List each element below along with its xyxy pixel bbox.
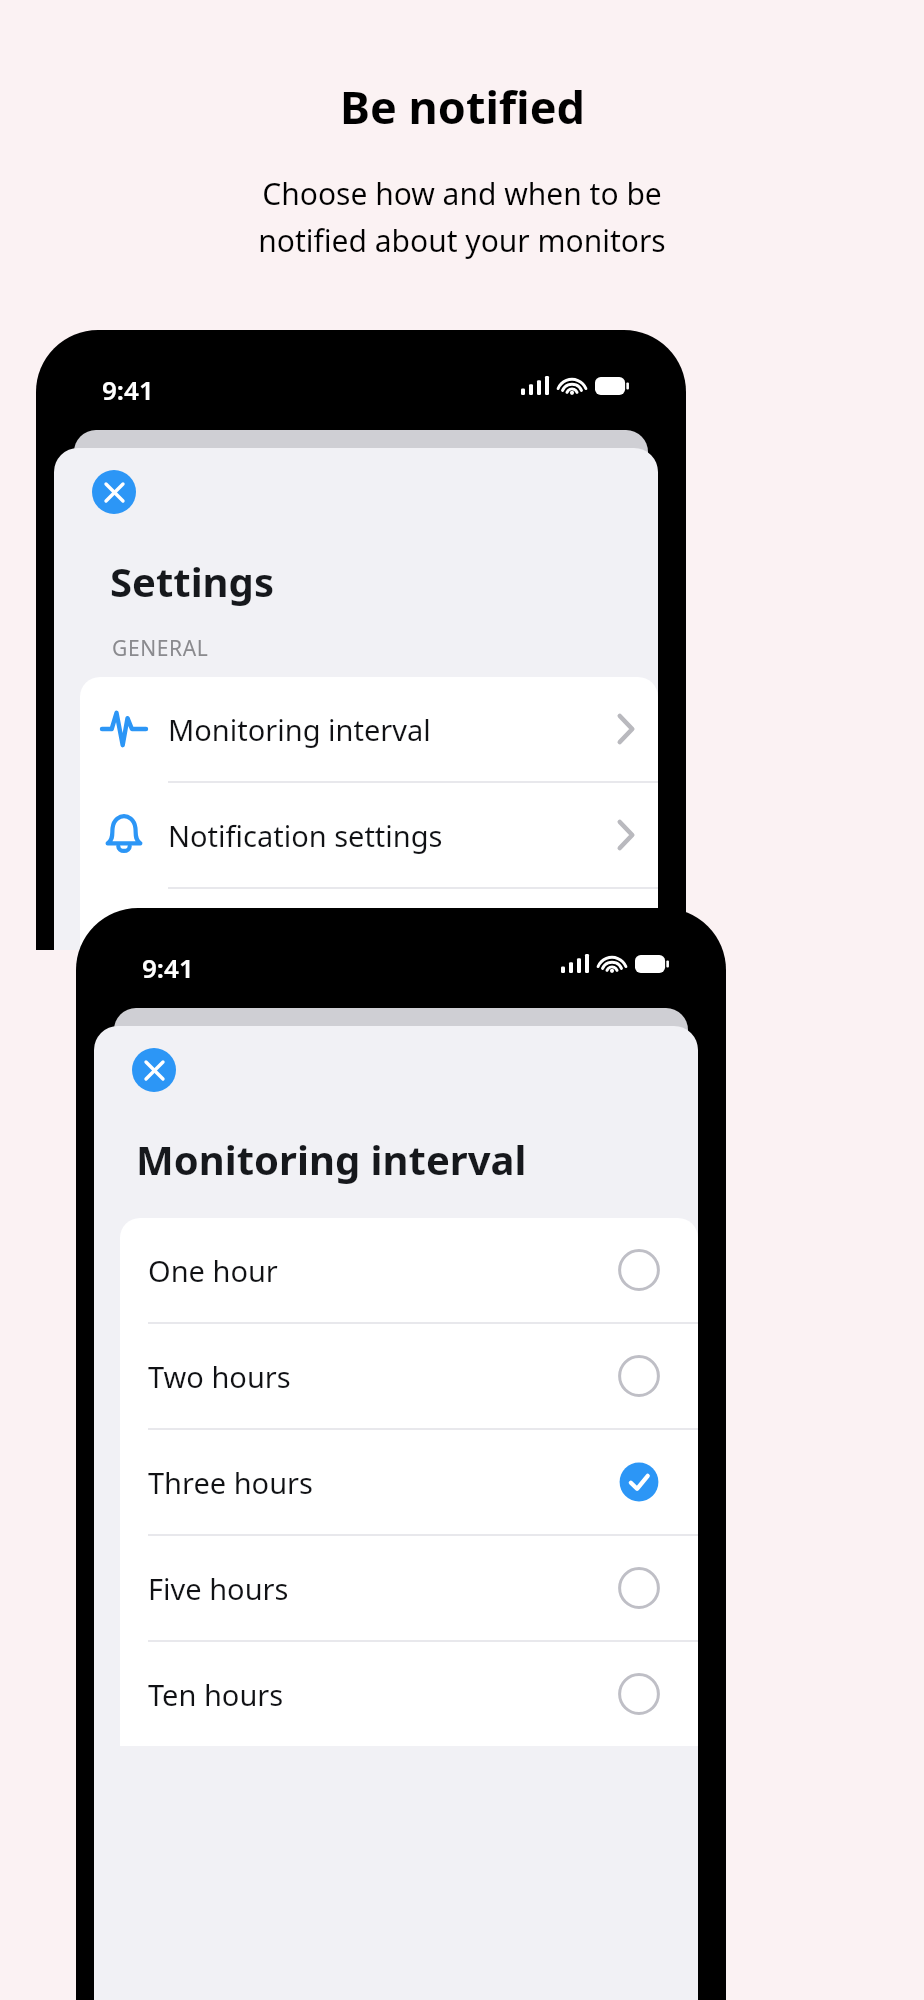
button[interactable]: Two hours — [120, 1324, 698, 1428]
button[interactable]: Monitoring interval — [80, 677, 658, 781]
staticText: Notification settings — [168, 816, 592, 855]
button[interactable]: Three hours — [120, 1430, 698, 1534]
button[interactable]: Notification settings — [80, 783, 658, 887]
staticText: Monitoring interval — [136, 1132, 527, 1186]
button[interactable]: One hour — [120, 1218, 698, 1322]
staticText: Two hours — [148, 1357, 618, 1396]
staticText: One hour — [148, 1251, 618, 1290]
staticText: Settings — [110, 554, 274, 608]
staticText: Ten hours — [148, 1675, 618, 1714]
button[interactable]: App badge — [80, 889, 658, 950]
staticText: Monitoring interval — [168, 710, 592, 749]
button[interactable]: Close — [132, 1048, 176, 1092]
staticText: GENERAL — [112, 634, 209, 663]
button[interactable]: Ten hours — [120, 1642, 698, 1746]
staticText: Choose how and when to be notified about… — [258, 173, 666, 261]
staticText: Five hours — [148, 1569, 618, 1608]
staticText: Be notified — [340, 76, 585, 137]
staticText: Three hours — [148, 1463, 618, 1502]
staticText: 9:41 — [142, 950, 194, 985]
button[interactable]: Five hours — [120, 1536, 698, 1640]
staticText: 9:41 — [102, 372, 154, 407]
button[interactable]: Close — [92, 470, 136, 514]
